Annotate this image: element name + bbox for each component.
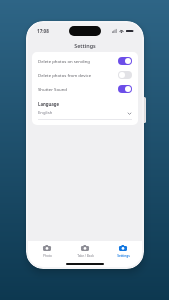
- staticText: Settings: [74, 42, 96, 49]
- staticText: Take / Back: [77, 254, 94, 258]
- staticText: Photo: [43, 254, 52, 258]
- staticText: Shutter Sound: [38, 86, 118, 92]
- button[interactable]: Delete photos from device: [38, 71, 132, 79]
- staticText: Language: [38, 101, 60, 107]
- staticText: Delete photos from device: [38, 72, 118, 78]
- button[interactable]: Delete photos on sending: [38, 57, 132, 65]
- button[interactable]: Settings: [104, 241, 142, 260]
- button[interactable]: Photo: [28, 241, 66, 260]
- staticText: English: [38, 110, 127, 116]
- button[interactable]: English: [38, 110, 132, 118]
- staticText: Settings: [117, 254, 130, 258]
- staticText: 17:08: [37, 28, 49, 34]
- button[interactable]: Shutter Sound: [38, 85, 132, 93]
- button[interactable]: Take / Back: [66, 241, 104, 260]
- staticText: Delete photos on sending: [38, 58, 118, 64]
